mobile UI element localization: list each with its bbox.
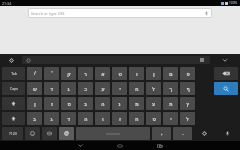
- button[interactable]: ץ: [180, 97, 195, 110]
- staticText: 21:34: [2, 1, 12, 6]
- staticText: י: [119, 86, 121, 92]
- button[interactable]: Settings: [194, 127, 215, 140]
- button[interactable]: [22, 56, 210, 64]
- staticText: ש: [33, 86, 37, 92]
- staticText: ה: [101, 101, 105, 107]
- button[interactable]: י: [163, 112, 178, 125]
- staticText: ע: [101, 86, 105, 92]
- button[interactable]: ו: [95, 112, 110, 125]
- button[interactable]: ז: [44, 97, 59, 110]
- button[interactable]: ק: [61, 67, 76, 80]
- button[interactable]: ו: [129, 67, 144, 80]
- staticText: ס: [67, 101, 71, 107]
- button[interactable]: Tab: [2, 67, 25, 80]
- button[interactable]: ח: [129, 112, 144, 125]
- button[interactable]: Backspace: [214, 67, 238, 80]
- button[interactable]: Emoji: [25, 127, 40, 140]
- button[interactable]: ש: [27, 82, 42, 95]
- staticText: ף: [186, 86, 190, 92]
- button[interactable]: Input method settings: [0, 54, 22, 66]
- button[interactable]: מ: [129, 97, 144, 110]
- button[interactable]: ל: [146, 82, 161, 95]
- button[interactable]: Home: [106, 141, 134, 150]
- button[interactable]: פ: [180, 67, 195, 80]
- staticText: נ: [118, 101, 121, 107]
- button[interactable]: ן: [27, 97, 42, 110]
- button[interactable]: ?123: [2, 127, 23, 140]
- button[interactable]: Shift: [2, 112, 25, 125]
- staticText: ץ: [186, 101, 189, 107]
- button[interactable]: צ: [146, 97, 161, 110]
- staticText: ל: [152, 86, 155, 92]
- staticText: ט: [152, 116, 156, 122]
- button[interactable]: ג: [61, 82, 76, 95]
- staticText: ת: [169, 101, 173, 107]
- staticText: 100%: [229, 1, 238, 5]
- button[interactable]: Back: [66, 141, 94, 150]
- button[interactable]: ט: [112, 67, 127, 80]
- staticText: ?123: [9, 131, 17, 136]
- button[interactable]: ': [44, 67, 59, 80]
- button[interactable]: ך: [163, 82, 178, 95]
- button[interactable]: נ: [112, 97, 127, 110]
- button[interactable]: ח: [129, 82, 144, 95]
- button[interactable]: ט: [146, 112, 161, 125]
- staticText: @: [64, 130, 69, 137]
- staticText: י: [170, 116, 172, 122]
- staticText: ה: [84, 116, 88, 122]
- staticText: Tab: [11, 71, 17, 76]
- button[interactable]: ז: [112, 112, 127, 125]
- button[interactable]: ף: [180, 82, 195, 95]
- button[interactable]: @: [59, 127, 74, 140]
- staticText: ם: [169, 71, 173, 77]
- button[interactable]: ל: [180, 112, 195, 125]
- button[interactable]: י: [112, 82, 127, 95]
- staticText: ק: [67, 71, 71, 77]
- button[interactable]: ד: [44, 82, 59, 95]
- button[interactable]: Space: [76, 127, 150, 140]
- staticText: ו: [136, 71, 138, 77]
- staticText: /: [34, 70, 36, 77]
- staticText: ד: [67, 116, 70, 122]
- other: Voice search: [204, 11, 209, 16]
- staticText: ג: [50, 116, 53, 122]
- button[interactable]: א: [95, 67, 110, 80]
- button[interactable]: ה: [95, 97, 110, 110]
- staticText: ב: [33, 116, 36, 122]
- button[interactable]: .: [173, 127, 192, 140]
- button[interactable]: כ: [78, 82, 93, 95]
- staticText: ר: [84, 71, 87, 77]
- button[interactable]: ר: [78, 67, 93, 80]
- staticText: ך: [169, 86, 172, 92]
- button[interactable]: Search or type URL: [28, 8, 212, 18]
- button[interactable]: ג: [44, 112, 59, 125]
- staticText: ב: [84, 101, 87, 107]
- button[interactable]: /: [27, 67, 42, 80]
- button[interactable]: ת: [163, 97, 178, 110]
- staticText: ן: [34, 101, 36, 107]
- button[interactable]: Voice input: [217, 127, 238, 140]
- staticText: א: [101, 71, 105, 77]
- button[interactable]: ן: [146, 67, 161, 80]
- button[interactable]: ס: [61, 97, 76, 110]
- button[interactable]: ב: [78, 97, 93, 110]
- staticText: כ: [84, 86, 87, 92]
- staticText: ט: [118, 71, 122, 77]
- staticText: Caps: [10, 86, 18, 91]
- button[interactable]: ם: [163, 67, 178, 80]
- button[interactable]: Hide keyboard: [210, 54, 240, 66]
- staticText: ח: [135, 86, 139, 92]
- button[interactable]: Caps: [2, 82, 25, 95]
- button[interactable]: Change language: [42, 127, 57, 140]
- staticText: ג: [67, 86, 70, 92]
- button[interactable]: ע: [95, 82, 110, 95]
- staticText: ז: [119, 116, 121, 122]
- button[interactable]: ב: [27, 112, 42, 125]
- button[interactable]: Recent apps: [146, 141, 174, 150]
- button[interactable]: Shift: [2, 97, 25, 110]
- button[interactable]: ה: [78, 112, 93, 125]
- button[interactable]: Search: [214, 82, 238, 95]
- staticText: ,: [161, 130, 163, 137]
- button[interactable]: ,: [152, 127, 171, 140]
- button[interactable]: ד: [61, 112, 76, 125]
